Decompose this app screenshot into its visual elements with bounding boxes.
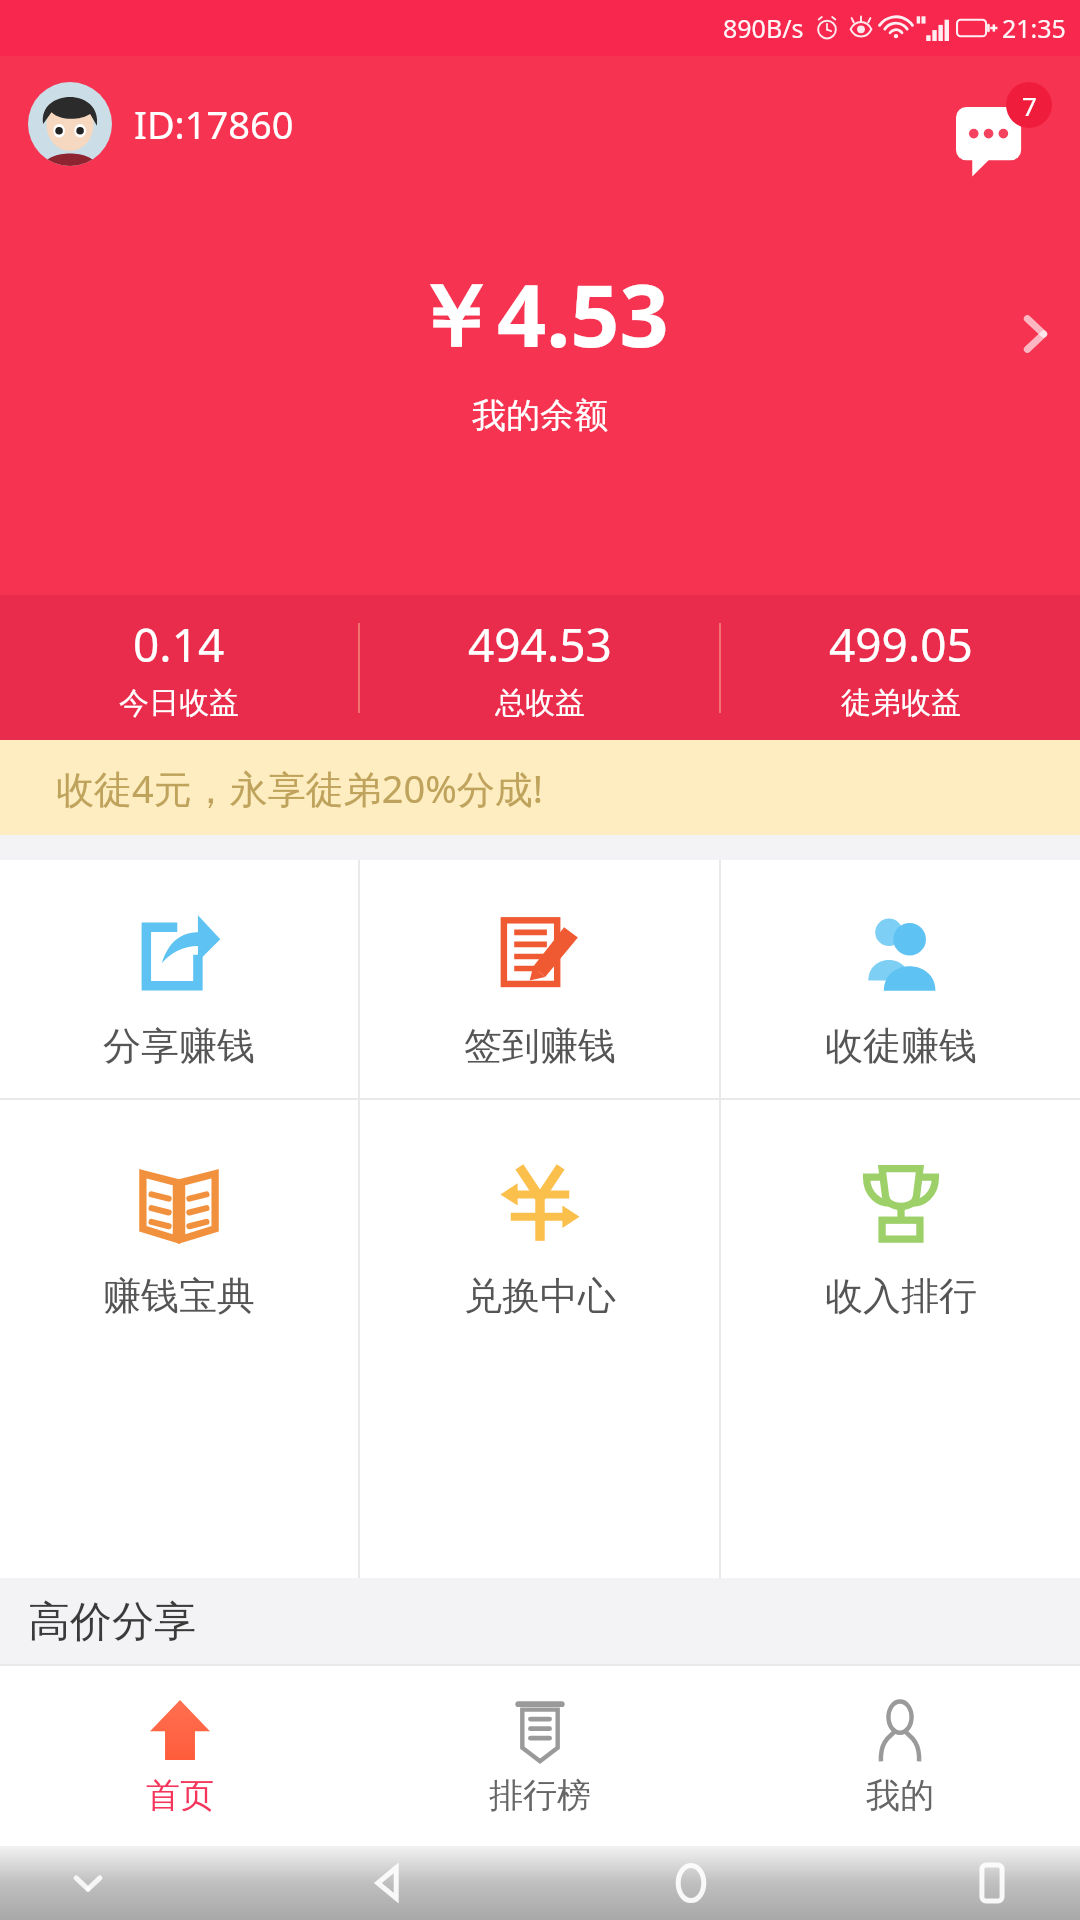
staticText: 0.14 xyxy=(133,613,225,676)
staticText: 徒弟收益 xyxy=(841,684,961,722)
staticText: 7 xyxy=(1022,88,1037,123)
button[interactable]: 494.53 xyxy=(360,595,719,740)
button[interactable]: 赚钱宝典 xyxy=(0,1100,358,1578)
staticText: 今日收益 xyxy=(119,684,239,722)
button[interactable]: Balance details xyxy=(990,289,1080,379)
staticText: 收徒4元，永享徒弟20%分成! xyxy=(56,762,544,814)
button[interactable]: 首页 xyxy=(0,1666,360,1846)
staticText: 我的余额 xyxy=(472,394,608,437)
staticText: ￥4.53 xyxy=(411,255,669,372)
staticText: 499.05 xyxy=(829,613,973,676)
button[interactable]: 收徒赚钱 xyxy=(721,860,1080,1098)
button[interactable]: 收入排行 xyxy=(721,1100,1080,1578)
button[interactable]: 兑换中心 xyxy=(360,1100,719,1578)
staticText: 签到赚钱 xyxy=(464,1022,616,1070)
staticText: 我的 xyxy=(866,1774,934,1817)
button[interactable]: 分享赚钱 xyxy=(0,860,358,1098)
button[interactable]: 收徒4元，永享徒弟20%分成! xyxy=(0,740,1080,835)
button[interactable]: 499.05 xyxy=(721,595,1080,740)
staticText: 494.53 xyxy=(468,613,612,676)
staticText: 890B/s xyxy=(723,11,804,45)
button[interactable]: Back xyxy=(361,1855,417,1911)
button[interactable]: Messages, 7 unread xyxy=(956,82,1052,178)
staticText: 赚钱宝典 xyxy=(103,1272,255,1320)
staticText: 21:35 xyxy=(1002,11,1066,45)
staticText: 兑换中心 xyxy=(464,1272,616,1320)
button[interactable]: Profile avatar xyxy=(28,82,112,166)
staticText: ID:17860 xyxy=(134,98,294,150)
staticText: 排行榜 xyxy=(489,1774,591,1817)
staticText: 高价分享 xyxy=(28,1596,196,1649)
staticText: 总收益 xyxy=(495,684,585,722)
button[interactable]: 0.14 xyxy=(0,595,358,740)
staticText: 分享赚钱 xyxy=(103,1022,255,1070)
button[interactable]: Home xyxy=(663,1855,719,1911)
button[interactable]: 排行榜 xyxy=(360,1666,720,1846)
staticText: 收徒赚钱 xyxy=(825,1022,977,1070)
button[interactable]: Recent apps xyxy=(964,1855,1020,1911)
staticText: 首页 xyxy=(146,1774,214,1817)
button[interactable]: 我的 xyxy=(720,1666,1080,1846)
button[interactable]: Hide navigation bar xyxy=(60,1855,116,1911)
button[interactable]: 签到赚钱 xyxy=(360,860,719,1098)
staticText: 收入排行 xyxy=(825,1272,977,1320)
